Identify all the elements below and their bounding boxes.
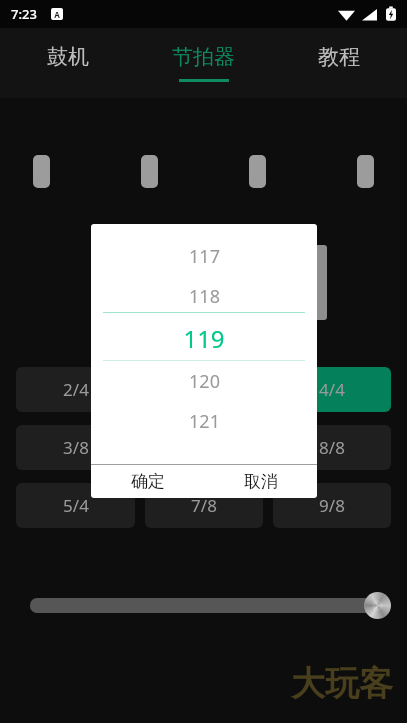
staticText: 8/8 bbox=[319, 436, 345, 459]
staticText: 3/4 bbox=[191, 378, 217, 401]
staticText: 117 bbox=[189, 244, 220, 269]
button[interactable]: 5/4 bbox=[16, 483, 135, 528]
staticText: 鼓机 bbox=[47, 44, 89, 70]
staticText: 2/4 bbox=[63, 378, 89, 401]
button[interactable]: 8/8 bbox=[273, 425, 391, 470]
staticText: 7/8 bbox=[191, 494, 217, 517]
button[interactable]: 4/4 bbox=[273, 367, 391, 412]
staticText: 节拍器 bbox=[172, 44, 235, 70]
staticText: 120 bbox=[189, 369, 220, 394]
button[interactable]: 2/4 bbox=[16, 367, 135, 412]
button[interactable]: 教程 bbox=[271, 28, 407, 98]
button[interactable]: 7/8 bbox=[145, 483, 263, 528]
staticText: 4/4 bbox=[319, 378, 345, 401]
staticText: 9/8 bbox=[319, 494, 345, 517]
button[interactable]: 取消 bbox=[204, 465, 317, 498]
button[interactable]: 3/8 bbox=[16, 425, 135, 470]
button[interactable]: 确定 bbox=[91, 465, 204, 498]
staticText: 121 bbox=[189, 409, 220, 434]
staticText: 5/4 bbox=[63, 494, 89, 517]
button[interactable]: 节拍器 bbox=[135, 28, 271, 98]
button[interactable]: Beat bbox=[33, 155, 50, 188]
staticText: 取消 bbox=[244, 471, 278, 492]
staticText: 确定 bbox=[131, 471, 165, 492]
button[interactable]: Beat bbox=[357, 155, 374, 188]
button[interactable]: 9/8 bbox=[273, 483, 391, 528]
staticText: 3/8 bbox=[63, 436, 89, 459]
staticText: 7:23 bbox=[11, 5, 37, 23]
button[interactable]: 鼓机 bbox=[0, 28, 135, 98]
button[interactable]: Volume bbox=[0, 589, 407, 621]
staticText: 118 bbox=[189, 284, 220, 309]
button[interactable]: 6/8 bbox=[145, 425, 263, 470]
button[interactable]: Beat bbox=[249, 155, 266, 188]
button[interactable]: Beat bbox=[141, 155, 158, 188]
staticText: 教程 bbox=[318, 44, 360, 70]
staticText: 大玩客 bbox=[291, 662, 393, 705]
staticText: A bbox=[54, 9, 60, 20]
button[interactable]: 3/4 bbox=[145, 367, 263, 412]
staticText: 119 bbox=[183, 322, 225, 355]
